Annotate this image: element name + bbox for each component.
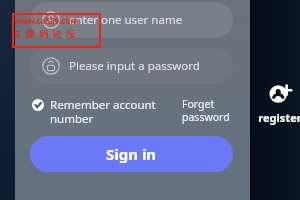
button[interactable]: Please input a password [30,48,233,84]
staticText: Please input a password [69,58,200,74]
button[interactable]: Forget password [182,97,240,124]
staticText: G 源 码 论 坛 [14,27,76,39]
button[interactable]: enter one user name [30,2,233,38]
staticText: register [258,110,300,125]
staticText: enter one user name [69,12,183,28]
button[interactable]: Remember account number [32,97,182,126]
staticText: Forget password [182,97,240,124]
button[interactable]: Sign in [30,136,233,172]
button[interactable]: register [252,83,300,125]
staticText: www.ca589.com [14,15,79,26]
staticText: Sign in [106,144,157,164]
staticText: Remember account number [50,97,182,126]
